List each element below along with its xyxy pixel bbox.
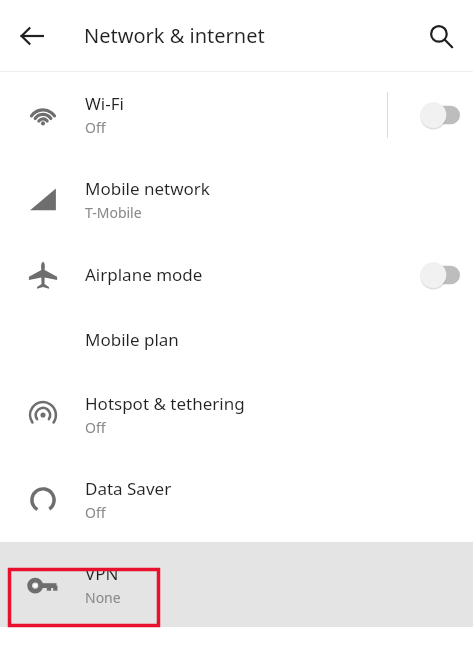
staticText: Data Saver xyxy=(85,477,172,500)
staticText: Mobile network xyxy=(85,177,210,200)
staticText: T-Mobile xyxy=(85,203,142,222)
button[interactable]: Mobile plan xyxy=(0,307,473,372)
staticText: Mobile plan xyxy=(85,328,179,351)
button[interactable]: Data Saver xyxy=(0,457,473,542)
staticText: VPN xyxy=(85,562,119,585)
button[interactable]: Wi-Fi toggle xyxy=(408,91,466,139)
button[interactable]: VPN xyxy=(0,542,473,627)
staticText: Wi-Fi xyxy=(85,92,124,115)
button[interactable]: Airplane mode xyxy=(0,242,473,307)
staticText: Hotspot & tethering xyxy=(85,392,245,415)
button[interactable]: Search xyxy=(417,12,465,60)
staticText: Off xyxy=(85,503,106,522)
button[interactable]: Airplane mode toggle xyxy=(408,251,466,299)
staticText: Network & internet xyxy=(84,22,265,49)
button[interactable]: Back xyxy=(8,12,56,60)
button[interactable]: Mobile network xyxy=(0,157,473,242)
staticText: Airplane mode xyxy=(85,263,203,286)
staticText: Off xyxy=(85,418,106,437)
staticText: Off xyxy=(85,118,106,137)
staticText: None xyxy=(85,588,121,607)
button[interactable]: Hotspot & tethering xyxy=(0,372,473,457)
button[interactable]: Wi-Fi xyxy=(0,72,473,157)
